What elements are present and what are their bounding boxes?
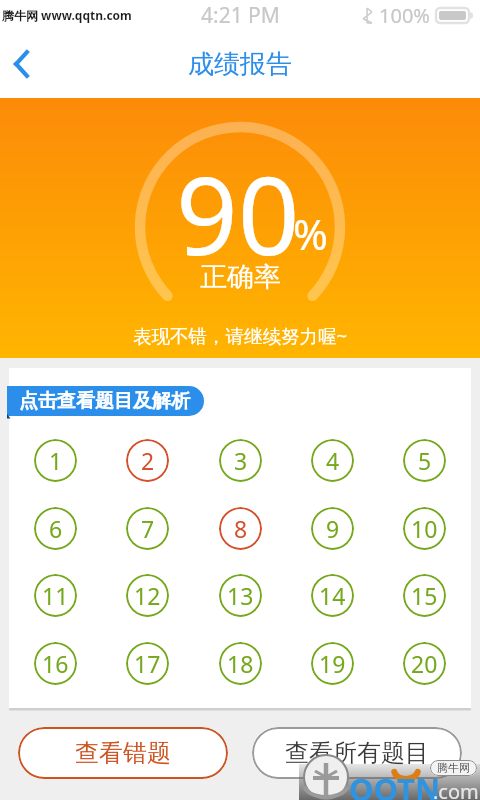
staticText: 3: [234, 445, 248, 476]
button[interactable]: 查看错题: [18, 727, 228, 779]
button[interactable]: 4: [311, 439, 354, 482]
staticText: QQTN: [349, 768, 441, 800]
staticText: 腾牛网 www.qqtn.com: [2, 7, 132, 23]
button[interactable]: 13: [219, 574, 262, 617]
button[interactable]: 查看所有题目: [252, 727, 462, 779]
staticText: 4: [326, 445, 340, 476]
button[interactable]: 1: [34, 439, 77, 482]
staticText: 腾牛网: [437, 761, 470, 775]
staticText: 19: [319, 648, 346, 679]
button[interactable]: 点击查看题目及解析: [7, 386, 204, 416]
button[interactable]: 14: [311, 574, 354, 617]
staticText: 正确率: [200, 260, 281, 294]
staticText: 表现不错，请继续努力喔~: [133, 323, 348, 348]
staticText: 点击查看题目及解析: [19, 389, 190, 413]
button[interactable]: 9: [311, 507, 354, 550]
staticText: 查看错题: [75, 738, 171, 768]
staticText: 13: [227, 580, 254, 611]
staticText: %: [293, 205, 328, 262]
staticText: 10: [411, 513, 438, 544]
staticText: 8: [234, 513, 248, 544]
staticText: 4:21 PM: [201, 1, 280, 30]
staticText: 6: [49, 513, 63, 544]
staticText: 16: [42, 648, 69, 679]
staticText: 14: [319, 580, 346, 611]
staticText: 成绩报告: [188, 48, 292, 81]
staticText: 15: [411, 580, 438, 611]
staticText: 90: [176, 140, 300, 287]
staticText: 100%: [379, 2, 430, 29]
button[interactable]: 10: [403, 507, 446, 550]
button[interactable]: 7: [126, 507, 169, 550]
button[interactable]: Back: [0, 41, 44, 87]
button[interactable]: 6: [34, 507, 77, 550]
button[interactable]: 15: [403, 574, 446, 617]
staticText: 17: [134, 648, 161, 679]
button[interactable]: 8: [219, 507, 262, 550]
button[interactable]: 12: [126, 574, 169, 617]
button[interactable]: 17: [126, 642, 169, 685]
staticText: 20: [411, 648, 438, 679]
staticText: 11: [42, 580, 69, 611]
staticText: 查看所有题目: [285, 738, 429, 768]
button[interactable]: 19: [311, 642, 354, 685]
staticText: 5: [418, 445, 432, 476]
button[interactable]: 3: [219, 439, 262, 482]
button[interactable]: 16: [34, 642, 77, 685]
button[interactable]: 18: [219, 642, 262, 685]
staticText: .com: [433, 778, 479, 800]
button[interactable]: 11: [34, 574, 77, 617]
staticText: 1: [49, 445, 63, 476]
staticText: 7: [141, 513, 155, 544]
button[interactable]: 2: [126, 439, 169, 482]
staticText: 12: [134, 580, 161, 611]
staticText: 2: [141, 445, 155, 476]
button[interactable]: 20: [403, 642, 446, 685]
staticText: 18: [227, 648, 254, 679]
staticText: 9: [326, 513, 340, 544]
button[interactable]: 5: [403, 439, 446, 482]
